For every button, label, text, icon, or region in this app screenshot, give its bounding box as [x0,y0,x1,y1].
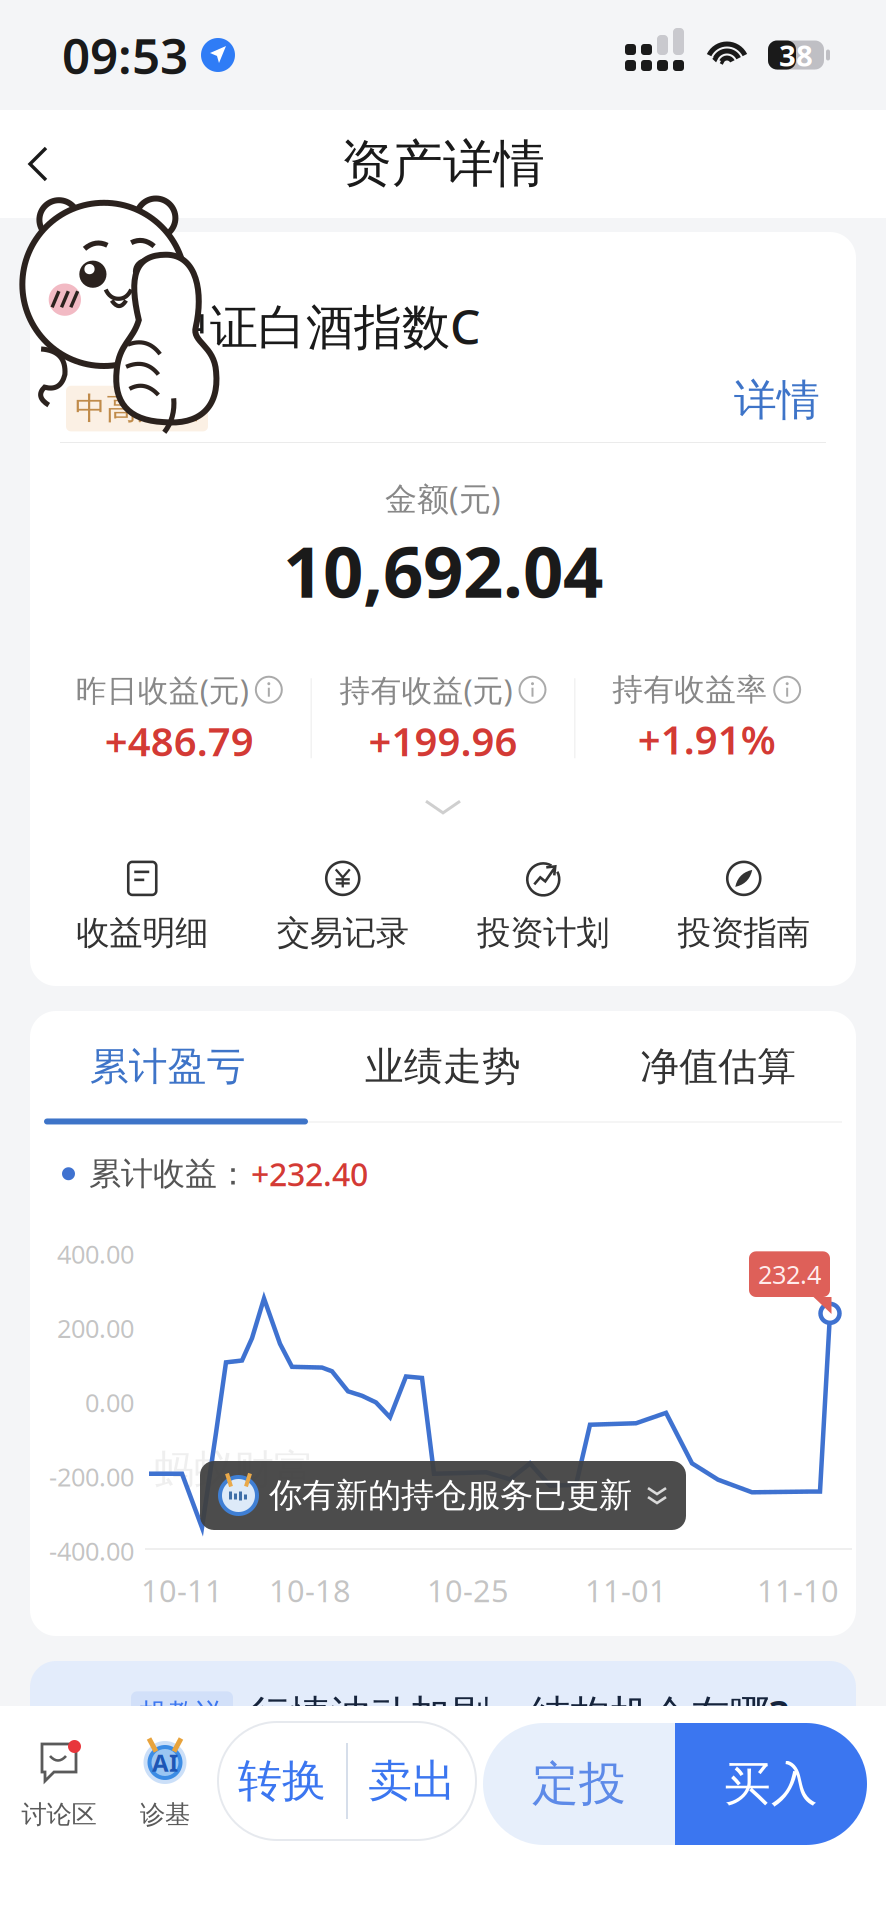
staticText: 200.00 [57,1311,134,1345]
staticText: 金额(元) [385,477,501,519]
button[interactable]: 你有新的持仓服务已更新 [200,1461,686,1530]
staticText: 38 [779,35,813,74]
staticText: 讨论区 [21,1799,96,1830]
staticText: 累计盈亏 [90,1043,246,1090]
staticText: 持有收益率 [612,671,767,709]
staticText: 400.00 [57,1237,134,1271]
staticText: 11-01 [585,1570,667,1611]
staticText: 交易记录 [277,912,409,953]
staticText: 详情 [734,374,820,426]
staticText: -400.00 [49,1534,134,1568]
button[interactable]: 净值估算 [581,1011,856,1122]
button[interactable]: 业绩走势 [305,1011,581,1122]
staticText: 卖出 [368,1754,456,1808]
staticText: 持有收益(元) [339,669,512,710]
staticText: 232.4 [758,1257,821,1291]
button[interactable]: 累计盈亏 [30,1011,305,1122]
staticText: 诊基 [140,1799,190,1830]
staticText: 10-11 [141,1570,223,1611]
button[interactable]: 投教说 [30,1661,856,1831]
button[interactable]: 收益明细 [42,852,242,959]
staticText: 定投 [532,1755,626,1813]
staticText: 投资指南 [678,912,810,953]
staticText: 累计收益： [89,1154,249,1193]
staticText: +1.91% [638,712,776,766]
staticText: 行情波动加剧：结构机会在哪? [250,1687,788,1740]
button[interactable]: 转换 [218,1722,346,1840]
staticText: +232.40 [251,1152,368,1195]
staticText: 净值估算 [640,1043,796,1090]
staticText: +486.79 [105,714,254,767]
staticText: 投教说 [140,1696,224,1731]
staticText: 转换 [238,1754,326,1808]
button[interactable]: 买入 [675,1723,867,1845]
staticText: 10,692.04 [283,523,603,617]
button[interactable]: 定投 [483,1723,675,1845]
staticText: 你有新的持仓服务已更新 [269,1475,632,1516]
button[interactable]: 交易记录 [242,852,443,959]
staticText: 10-25 [427,1570,509,1611]
staticText: 投资计划 [477,912,609,953]
staticText: 昨日收益(元) [76,669,249,710]
button[interactable]: 投资计划 [443,852,643,959]
staticText: 资产详情 [341,133,545,195]
staticText: +199.96 [368,714,517,767]
staticText: 0.00 [85,1385,134,1419]
staticText: 招商中证白酒指数C [66,294,480,358]
button[interactable]: 返回 [0,125,78,203]
staticText: -200.00 [49,1460,134,1493]
button[interactable]: 详情 [698,360,856,440]
button[interactable]: 讨论区 [0,1736,118,1836]
staticText: 业绩走势 [365,1043,521,1090]
staticText: 10-18 [269,1570,351,1611]
staticText: 09:53 [62,22,188,88]
staticText: 买入 [724,1755,818,1813]
button[interactable]: AI [110,1736,220,1836]
button[interactable]: 卖出 [348,1722,476,1840]
staticText: AI [152,1747,178,1778]
staticText: 中高风险 [75,390,199,427]
staticText: 收益明细 [76,912,208,953]
staticText: 蚂蚁财富 [154,1445,314,1494]
staticText: 11-10 [757,1570,839,1611]
button[interactable]: 投资指南 [643,852,844,959]
